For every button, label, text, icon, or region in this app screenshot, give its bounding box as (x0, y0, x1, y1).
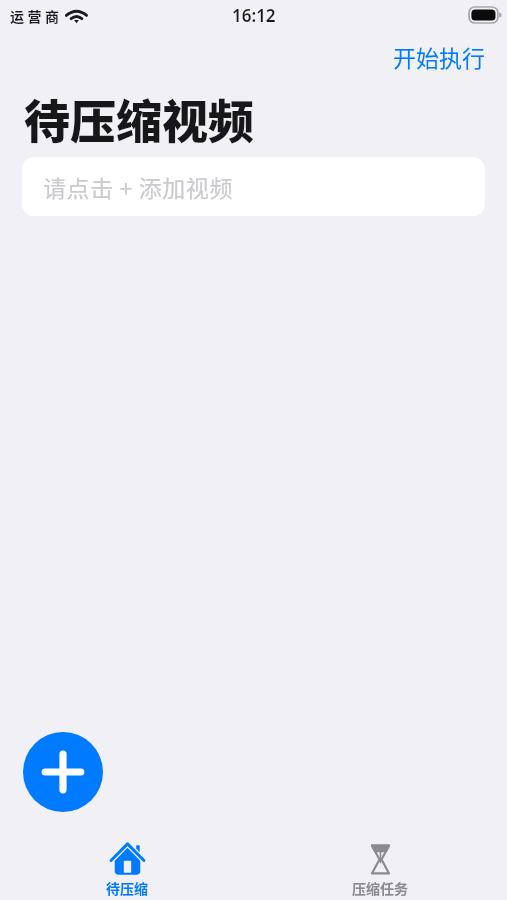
staticText: 16:12 (232, 4, 276, 27)
staticText: 开始执行 (393, 40, 485, 73)
staticText: 待压缩 (106, 878, 148, 898)
button[interactable]: 压缩任务 (328, 832, 432, 898)
staticText: 待压缩视频 (24, 85, 254, 152)
staticText: 运营商 (10, 6, 63, 26)
staticText: 请点击 + 添加视频 (43, 170, 234, 203)
button[interactable]: 待压缩 (82, 832, 172, 898)
button[interactable]: 请点击 + 添加视频 (22, 157, 485, 216)
button[interactable]: 开始执行 (378, 38, 500, 74)
button[interactable]: Add video (23, 732, 103, 812)
staticText: 压缩任务 (352, 878, 408, 898)
